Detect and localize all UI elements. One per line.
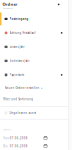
staticText: Filter und Sortierung xyxy=(3,97,33,101)
button[interactable]: Posteingang xyxy=(0,12,68,26)
staticText: Papierkorb xyxy=(10,73,25,77)
staticText: Vorletztes Jahr xyxy=(10,59,30,63)
button[interactable]: Mehr xyxy=(56,2,61,7)
staticText: Neuen Ordner erstellen xyxy=(5,86,40,90)
staticText: 07.06.2008 xyxy=(10,136,28,140)
staticText: Letztes Jahr xyxy=(10,45,25,49)
button[interactable]: Letztes Jahr xyxy=(0,40,68,54)
button[interactable]: Ungelesene zuerst xyxy=(0,107,68,119)
button[interactable]: Vorletztes Jahr xyxy=(0,54,68,68)
button[interactable]: Papierkorb xyxy=(0,68,68,82)
staticText: Ungelesene zuerst xyxy=(9,111,36,115)
staticText: Bis xyxy=(3,144,7,148)
button[interactable]: Von xyxy=(0,134,68,142)
staticText: Achtung Fristablauf xyxy=(10,31,36,35)
button[interactable]: Achtung Fristablauf xyxy=(0,26,68,40)
staticText: Ordner xyxy=(3,2,18,7)
button[interactable]: Bis xyxy=(0,142,68,150)
staticText: ZEITRAUM xyxy=(3,129,10,131)
staticText: POSTEINGANG xyxy=(3,8,13,9)
staticText: 07.06.2008 xyxy=(10,144,28,148)
staticText: + xyxy=(41,86,43,90)
staticText: Posteingang xyxy=(10,17,29,21)
button[interactable]: Neuen Ordner erstellen xyxy=(0,82,68,94)
staticText: Von xyxy=(3,136,9,140)
